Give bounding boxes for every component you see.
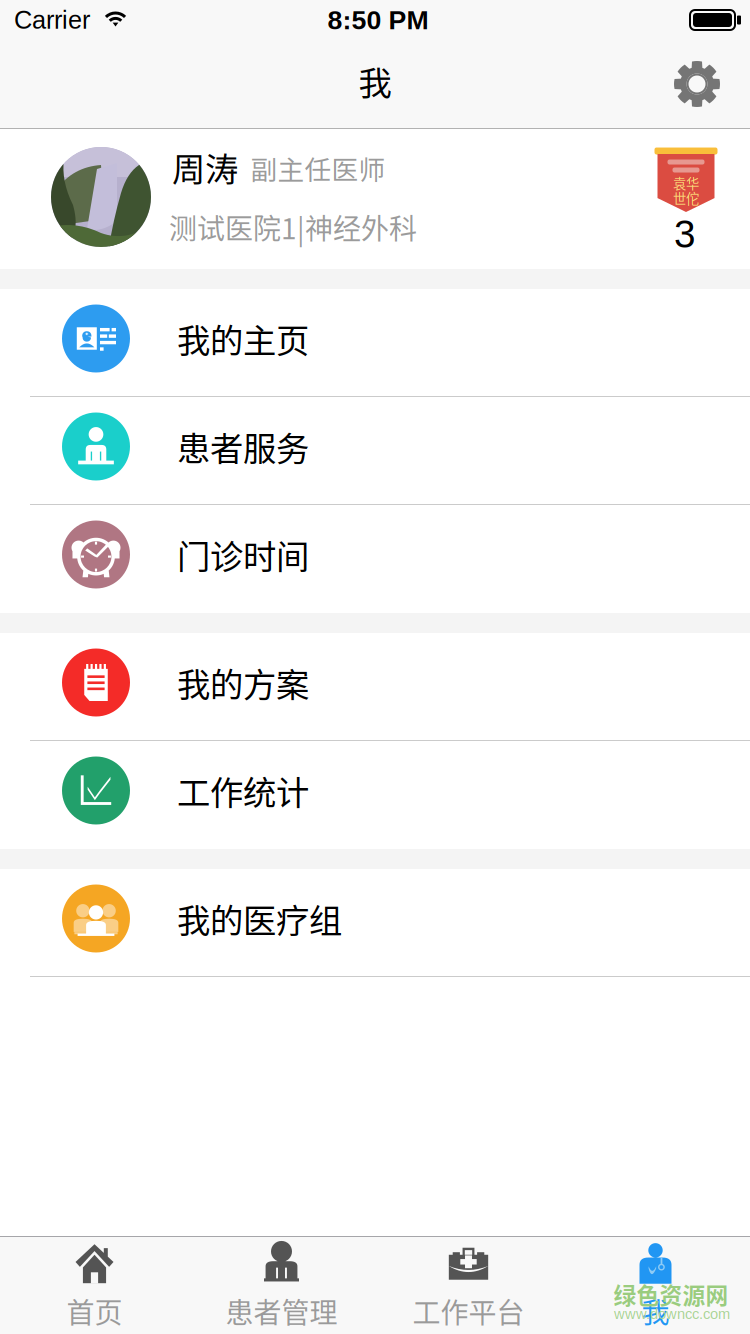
staticText: 绿色资源网 bbox=[613, 1278, 728, 1310]
button[interactable]: 患者管理 bbox=[188, 1237, 375, 1334]
button[interactable]: 我的方案 bbox=[0, 633, 750, 741]
staticText: 世佗 bbox=[673, 188, 699, 208]
staticText: 我 bbox=[358, 57, 391, 105]
staticText: 8:50 PM bbox=[327, 5, 428, 35]
staticText: 3 bbox=[674, 212, 696, 256]
button[interactable]: 我的医疗组 bbox=[0, 869, 750, 977]
button[interactable]: 我 bbox=[562, 1237, 749, 1334]
staticText: 袁华 bbox=[673, 173, 699, 193]
button[interactable]: 工作平台 bbox=[375, 1237, 562, 1334]
staticText: 测试医院1|神经外科 bbox=[169, 207, 417, 247]
staticText: 周涛 bbox=[172, 143, 238, 191]
staticText: 副主任医师 bbox=[250, 149, 385, 187]
button[interactable]: 设置 bbox=[664, 51, 730, 117]
staticText: Carrier bbox=[14, 6, 90, 34]
staticText: 我的方案 bbox=[177, 658, 309, 707]
staticText: www.downcc.com bbox=[614, 1306, 730, 1322]
staticText: 我的医疗组 bbox=[177, 894, 342, 943]
button[interactable]: 患者服务 bbox=[0, 397, 750, 505]
staticText: 患者管理 bbox=[225, 1291, 337, 1331]
button[interactable]: 首页 bbox=[1, 1237, 188, 1334]
button[interactable]: 工作统计 bbox=[0, 741, 750, 849]
button[interactable]: 门诊时间 bbox=[0, 505, 750, 613]
staticText: 首页 bbox=[66, 1291, 122, 1331]
staticText: 患者服务 bbox=[177, 422, 309, 471]
staticText: 我的主页 bbox=[177, 314, 309, 363]
button[interactable]: 我的主页 bbox=[0, 289, 750, 397]
staticText: 工作平台 bbox=[412, 1291, 524, 1331]
staticText: 门诊时间 bbox=[177, 530, 309, 579]
staticText: 工作统计 bbox=[177, 766, 309, 815]
staticText: 我 bbox=[641, 1291, 669, 1331]
button[interactable]: 周涛 bbox=[0, 129, 750, 269]
